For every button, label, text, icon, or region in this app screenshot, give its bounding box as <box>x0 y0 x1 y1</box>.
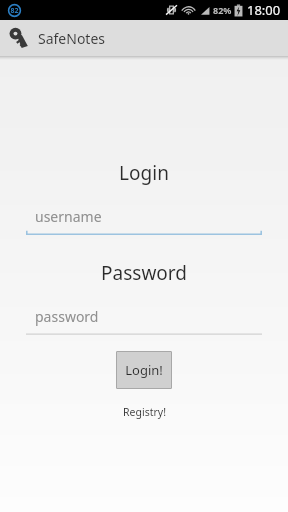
staticText: Password <box>101 260 187 286</box>
staticText: 82% <box>213 4 232 16</box>
staticText: Registry! <box>123 405 166 419</box>
button[interactable]: Password input <box>26 304 262 338</box>
staticText: username <box>35 207 102 226</box>
button[interactable]: Registry! <box>113 403 176 421</box>
staticText: Login! <box>125 361 163 379</box>
staticText: SafeNotes <box>38 29 106 48</box>
staticText: Login <box>119 160 169 186</box>
button[interactable]: Username input <box>26 204 262 238</box>
staticText: password <box>35 307 99 326</box>
staticText: 18:00 <box>247 1 281 19</box>
other: SafeNotes app icon <box>8 27 30 49</box>
button[interactable]: Login! <box>116 351 172 389</box>
staticText: 82 <box>10 6 19 16</box>
